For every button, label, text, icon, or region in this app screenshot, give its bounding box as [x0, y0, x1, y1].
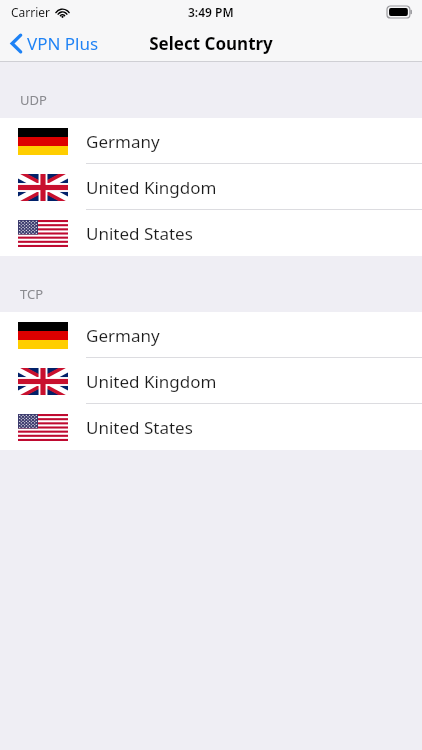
staticText: Germany — [86, 130, 160, 153]
button[interactable]: Germany — [0, 118, 422, 164]
button[interactable]: VPN Plus — [0, 28, 109, 59]
staticText: Select Country — [149, 32, 273, 55]
staticText: Carrier — [11, 4, 51, 20]
button[interactable]: United Kingdom — [0, 358, 422, 404]
staticText: United Kingdom — [86, 370, 217, 393]
button[interactable]: United States — [0, 210, 422, 256]
staticText: UDP — [20, 91, 47, 109]
staticText: Germany — [86, 324, 160, 347]
staticText: VPN Plus — [27, 32, 99, 55]
button[interactable]: Germany — [0, 312, 422, 358]
staticText: TCP — [20, 285, 44, 303]
button[interactable]: United Kingdom — [0, 164, 422, 210]
staticText: 3:49 PM — [188, 4, 234, 20]
staticText: United States — [86, 416, 193, 439]
staticText: United States — [86, 222, 193, 245]
button[interactable]: United States — [0, 404, 422, 450]
staticText: United Kingdom — [86, 176, 217, 199]
